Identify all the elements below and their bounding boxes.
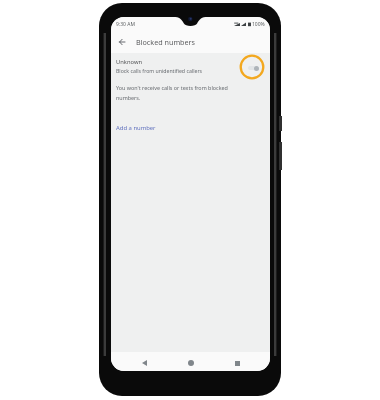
staticText: 100% <box>252 21 265 28</box>
staticText: Blocked numbers <box>136 37 195 47</box>
staticText: You won't receive calls or texts from bl… <box>116 84 248 101</box>
button[interactable]: Recent apps <box>230 356 244 370</box>
button[interactable]: Block calls from unidentified callers <box>239 55 265 79</box>
button[interactable]: Add a number <box>116 124 156 132</box>
button[interactable]: Home <box>184 356 198 370</box>
staticText: Block calls from unidentified callers <box>116 67 203 74</box>
button[interactable]: Back <box>114 34 130 50</box>
staticText: Add a number <box>116 124 156 132</box>
staticText: Unknown <box>116 58 143 66</box>
staticText: 9:30 AM <box>116 21 135 28</box>
button[interactable]: Unknown <box>111 54 270 78</box>
button[interactable]: Back <box>137 356 151 370</box>
